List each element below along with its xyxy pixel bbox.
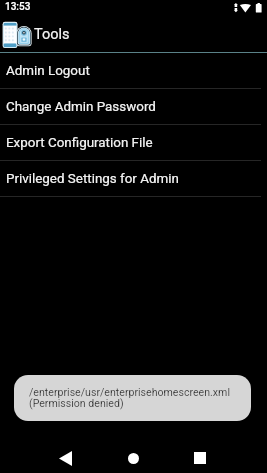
button[interactable]: Recent apps [186,444,214,472]
button[interactable]: Home [119,444,147,472]
button[interactable]: Privileged Settings for Admin [0,161,267,197]
staticText: Export Configuration File [6,135,153,151]
staticText: Admin Logout [6,63,90,79]
button[interactable]: Change Admin Password [0,89,267,125]
staticText: Change Admin Password [6,99,156,115]
button[interactable]: Export Configuration File [0,125,267,161]
staticText: /enterprise/usr/enterprisehomescreen.xml… [29,386,230,410]
staticText: Tools [34,26,70,43]
staticText: 13:53 [5,1,31,13]
staticText: Privileged Settings for Admin [6,171,179,187]
button[interactable]: Admin Logout [0,53,267,89]
button[interactable]: Back [51,444,79,472]
